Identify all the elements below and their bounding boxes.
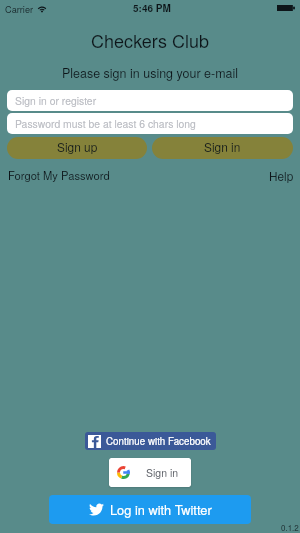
button[interactable]: Log in with Twitter — [49, 495, 251, 524]
staticText: Please sign in using your e-mail — [0, 64, 300, 82]
button[interactable]: Sign in — [109, 458, 191, 487]
staticText: Sign in — [146, 465, 179, 480]
staticText: Log in with Twitter — [110, 500, 212, 518]
staticText: Sign in — [204, 138, 241, 155]
staticText: Sign in or register — [15, 93, 97, 108]
staticText: Password must be at least 6 chars long — [15, 116, 196, 131]
staticText: Sign up — [57, 138, 98, 155]
button[interactable]: Sign up — [7, 137, 147, 159]
button[interactable]: Sign in or register — [7, 90, 293, 111]
staticText: 5:46 PM — [133, 1, 171, 15]
button[interactable]: Forgot My Password — [8, 167, 110, 183]
button[interactable]: Sign in — [152, 137, 293, 159]
staticText: Checkers Club — [0, 27, 300, 53]
button[interactable]: Password must be at least 6 chars long — [7, 113, 293, 134]
staticText: 0.1.2 — [281, 522, 299, 533]
button[interactable]: Continue with Facebook — [85, 432, 216, 450]
staticText: Continue with Facebook — [106, 434, 211, 448]
button[interactable]: Help — [269, 167, 294, 184]
staticText: Carrier — [5, 2, 34, 15]
